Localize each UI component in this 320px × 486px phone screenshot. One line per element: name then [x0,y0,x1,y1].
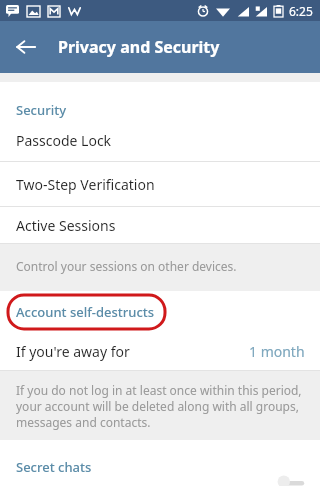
staticText: messages and contacts. [16,414,151,430]
staticText: If you do not log in at least once withi… [16,382,302,398]
staticText: 6:25 [289,3,313,19]
button[interactable]: Active Sessions [0,207,320,243]
button[interactable]: Back [6,27,46,67]
staticText: your account will be deleted along with … [16,398,299,414]
button[interactable]: Account self-destructs [16,303,155,321]
staticText: Security [16,101,66,119]
staticText: Active Sessions [16,216,116,235]
staticText: Privacy and Security [58,36,220,58]
staticText: Passcode Lock [16,131,112,150]
staticText: Control your sessions on other devices. [16,258,237,274]
button[interactable]: Passcode Lock [0,119,320,161]
staticText: Secret chats [16,458,92,476]
button[interactable]: Two-Step Verification [0,162,320,206]
staticText: Two-Step Verification [16,175,155,194]
staticText: Account self-destructs [16,303,155,321]
button[interactable]: If you're away for [0,333,320,370]
staticText: 1 month [249,342,305,361]
staticText: If you're away for [16,342,130,361]
